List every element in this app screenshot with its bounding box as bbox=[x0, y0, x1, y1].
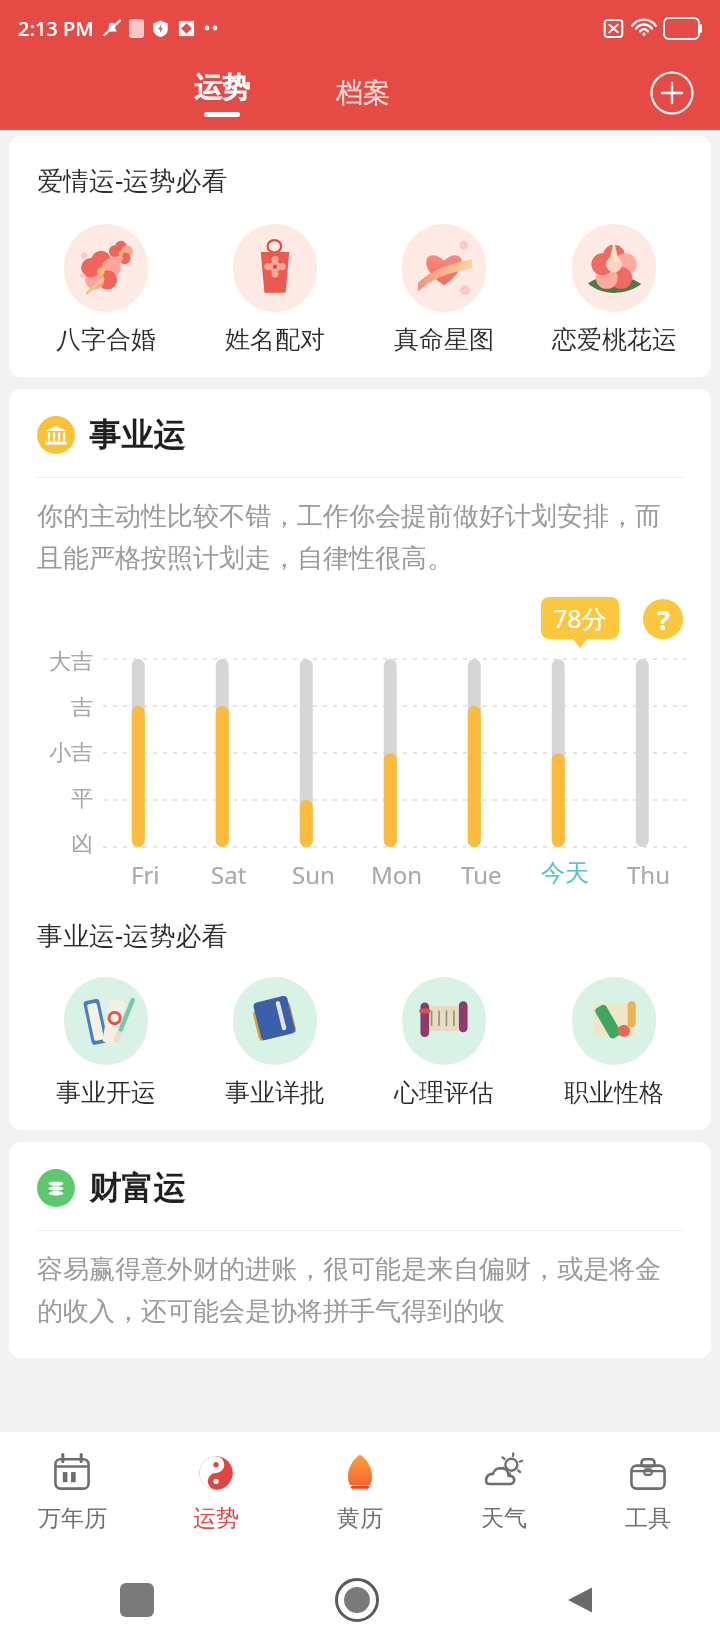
staticText: 小吉 bbox=[49, 739, 93, 767]
staticText: Mon bbox=[371, 858, 423, 891]
staticText: 凶 bbox=[71, 830, 93, 858]
staticText: 事业运-运势必看 bbox=[37, 917, 228, 953]
staticText: 平 bbox=[71, 785, 93, 813]
button[interactable]: 运势 bbox=[180, 66, 264, 121]
button[interactable]: 万年历 bbox=[0, 1432, 144, 1550]
button[interactable]: 工具 bbox=[576, 1432, 720, 1550]
staticText: 大吉 bbox=[49, 648, 93, 676]
staticText: ? bbox=[657, 601, 670, 638]
staticText: 档案 bbox=[336, 76, 390, 110]
staticText: 容易赢得意外财的进账，很可能是来自偏财，或是将金的收入，还可能会是协将拼手气得到… bbox=[37, 1253, 683, 1328]
button[interactable]: Recents bbox=[120, 1583, 154, 1617]
staticText: Thu bbox=[627, 858, 671, 891]
button[interactable]: 事业详批 bbox=[190, 977, 359, 1108]
button[interactable]: 黄历 bbox=[288, 1432, 432, 1550]
button[interactable]: 运势 bbox=[144, 1432, 288, 1550]
button[interactable]: Home bbox=[335, 1578, 379, 1622]
button[interactable]: 职业性格 bbox=[529, 977, 699, 1108]
staticText: 今天 bbox=[541, 858, 589, 888]
staticText: Sat bbox=[211, 858, 247, 891]
staticText: 真命星图 bbox=[394, 324, 494, 355]
button[interactable]: 真命星图 bbox=[359, 224, 529, 355]
staticText: 事业运 bbox=[89, 415, 185, 455]
staticText: 职业性格 bbox=[564, 1077, 664, 1108]
button[interactable]: 心理评估 bbox=[359, 977, 529, 1108]
staticText: 恋爱桃花运 bbox=[552, 324, 677, 355]
button[interactable]: Help bbox=[643, 599, 683, 639]
staticText: 吉 bbox=[71, 694, 93, 722]
staticText: 工具 bbox=[625, 1504, 671, 1533]
button[interactable]: 档案 bbox=[322, 66, 404, 120]
staticText: 事业详批 bbox=[225, 1077, 325, 1108]
staticText: 心理评估 bbox=[394, 1077, 494, 1108]
staticText: 你的主动性比较不错，工作你会提前做好计划安排，而且能严格按照计划走，自律性很高。 bbox=[37, 500, 683, 575]
staticText: 爱情运-运势必看 bbox=[37, 162, 228, 198]
staticText: 黄历 bbox=[337, 1504, 383, 1533]
staticText: 运势 bbox=[194, 70, 250, 105]
button[interactable]: Back bbox=[560, 1580, 600, 1620]
button[interactable]: 天气 bbox=[432, 1432, 576, 1550]
staticText: 78分 bbox=[553, 601, 607, 635]
staticText: 事业开运 bbox=[56, 1077, 156, 1108]
staticText: Sun bbox=[292, 858, 335, 891]
staticText: 运势 bbox=[193, 1504, 239, 1533]
staticText: 2:13 PM bbox=[18, 15, 94, 42]
button[interactable]: 八字合婚 bbox=[21, 224, 190, 355]
button[interactable]: 姓名配对 bbox=[190, 224, 359, 355]
staticText: 八字合婚 bbox=[56, 324, 156, 355]
staticText: 姓名配对 bbox=[225, 324, 325, 355]
staticText: 天气 bbox=[481, 1504, 527, 1533]
staticText: 财富运 bbox=[89, 1168, 185, 1208]
button[interactable]: Add profile bbox=[650, 71, 694, 115]
staticText: Tue bbox=[461, 858, 502, 891]
staticText: Fri bbox=[131, 858, 160, 891]
staticText: 万年历 bbox=[38, 1504, 107, 1533]
button[interactable]: 恋爱桃花运 bbox=[529, 224, 699, 355]
button[interactable]: 事业开运 bbox=[21, 977, 190, 1108]
